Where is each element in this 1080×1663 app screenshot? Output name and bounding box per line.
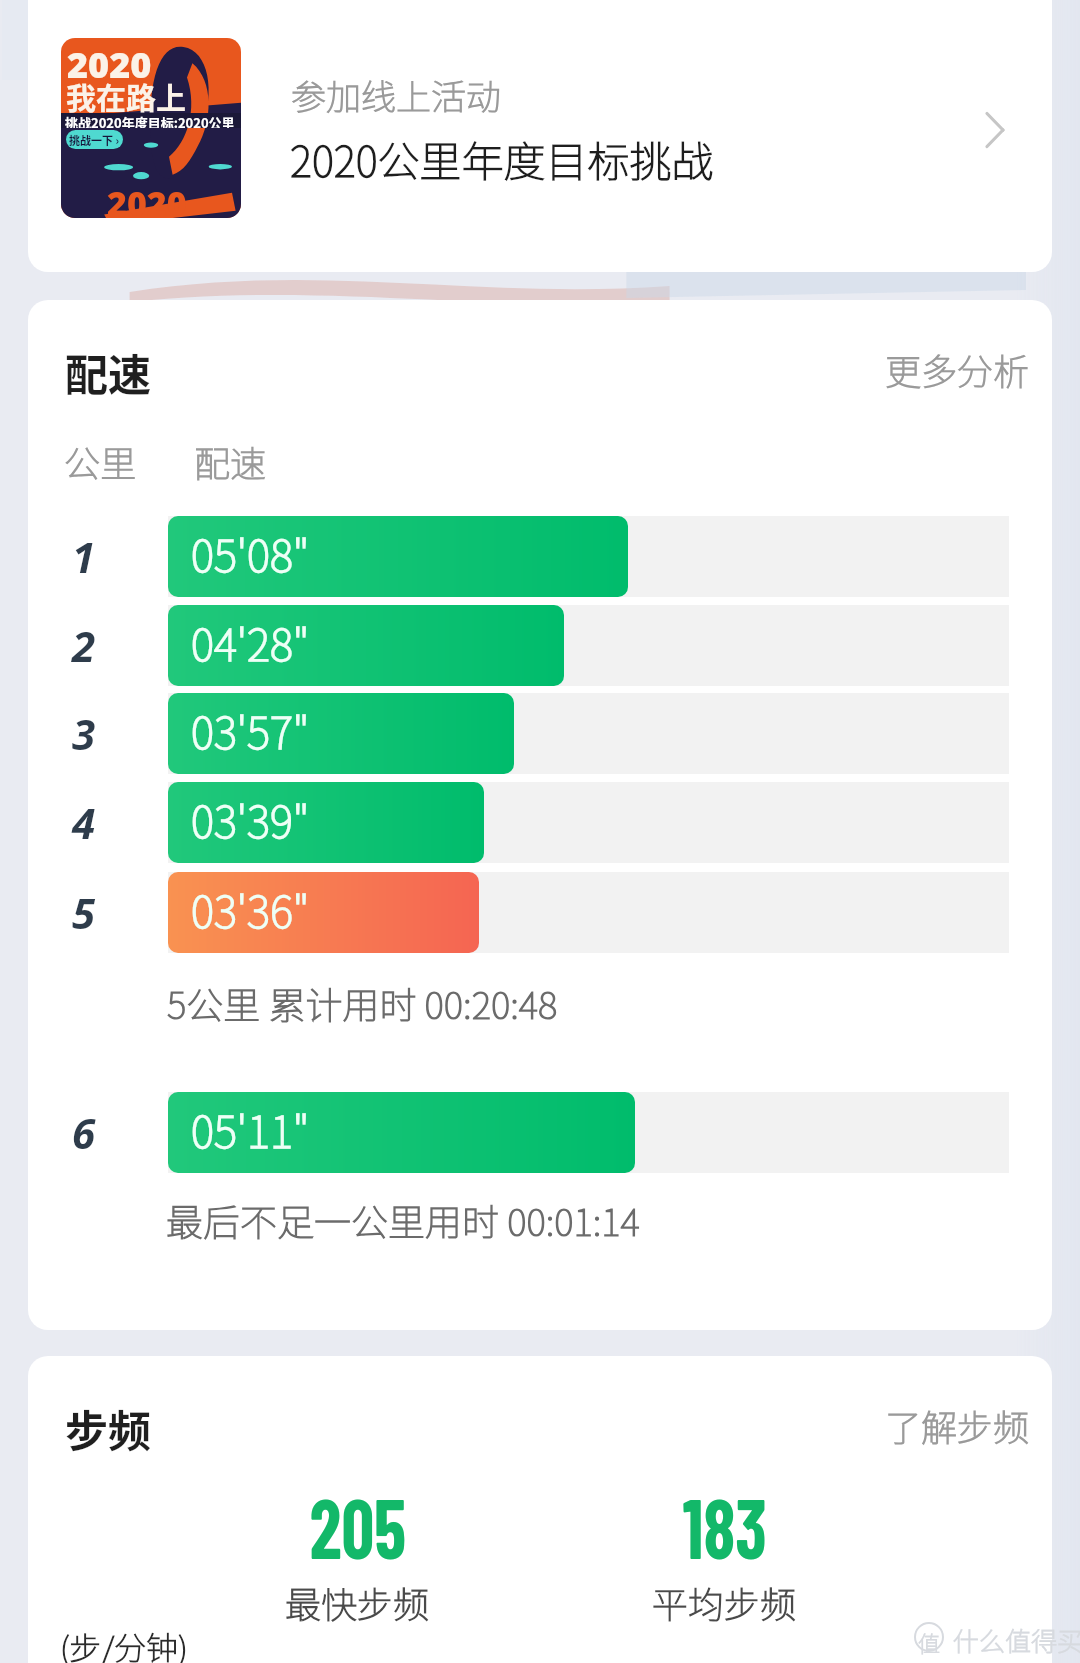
- staticText: 05'11": [191, 1097, 310, 1161]
- staticText: 什么值得买: [953, 1621, 1080, 1659]
- staticText: 我在路上: [66, 74, 186, 117]
- staticText: 6: [72, 1104, 96, 1161]
- staticText: (步/分钟): [60, 1623, 188, 1663]
- button[interactable]: 了解步频: [881, 1395, 1034, 1455]
- staticText: 03'39": [191, 787, 310, 851]
- staticText: 参加线上活动: [291, 69, 502, 120]
- staticText: 05'08": [191, 521, 310, 585]
- staticText: 挑战2020年度目标:2020公里: [65, 113, 235, 128]
- button[interactable]: 2020: [28, 0, 1052, 272]
- button[interactable]: 查看活动详情: [960, 95, 1030, 165]
- staticText: 03'36": [191, 877, 310, 941]
- staticText: 更多分析: [885, 343, 1030, 395]
- staticText: 3: [72, 705, 96, 762]
- staticText: 2: [72, 617, 96, 674]
- staticText: 5: [72, 884, 96, 941]
- staticText: 步频: [65, 1397, 151, 1459]
- staticText: 最后不足一公里用时 00:01:14: [166, 1193, 640, 1247]
- staticText: 183: [683, 1475, 767, 1576]
- staticText: 4: [72, 794, 96, 851]
- staticText: 1: [72, 528, 96, 585]
- staticText: 2020: [107, 180, 187, 218]
- staticText: 2020公里年度目标挑战: [290, 128, 714, 189]
- button[interactable]: 更多分析: [881, 339, 1034, 399]
- staticText: 公里: [64, 435, 137, 487]
- staticText: 配速: [194, 435, 267, 487]
- staticText: 最快步频: [285, 1576, 430, 1628]
- staticText: 5公里 累计用时 00:20:48: [167, 976, 558, 1030]
- staticText: 04'28": [191, 610, 310, 674]
- staticText: 值: [918, 1626, 941, 1658]
- staticText: 205: [310, 1475, 406, 1576]
- staticText: 2020: [67, 40, 152, 89]
- staticText: 了解步频: [885, 1399, 1030, 1451]
- staticText: 平均步频: [652, 1576, 797, 1628]
- staticText: 挑战一下 ›: [69, 132, 120, 148]
- staticText: 配速: [65, 341, 151, 403]
- staticText: 03'57": [191, 698, 310, 762]
